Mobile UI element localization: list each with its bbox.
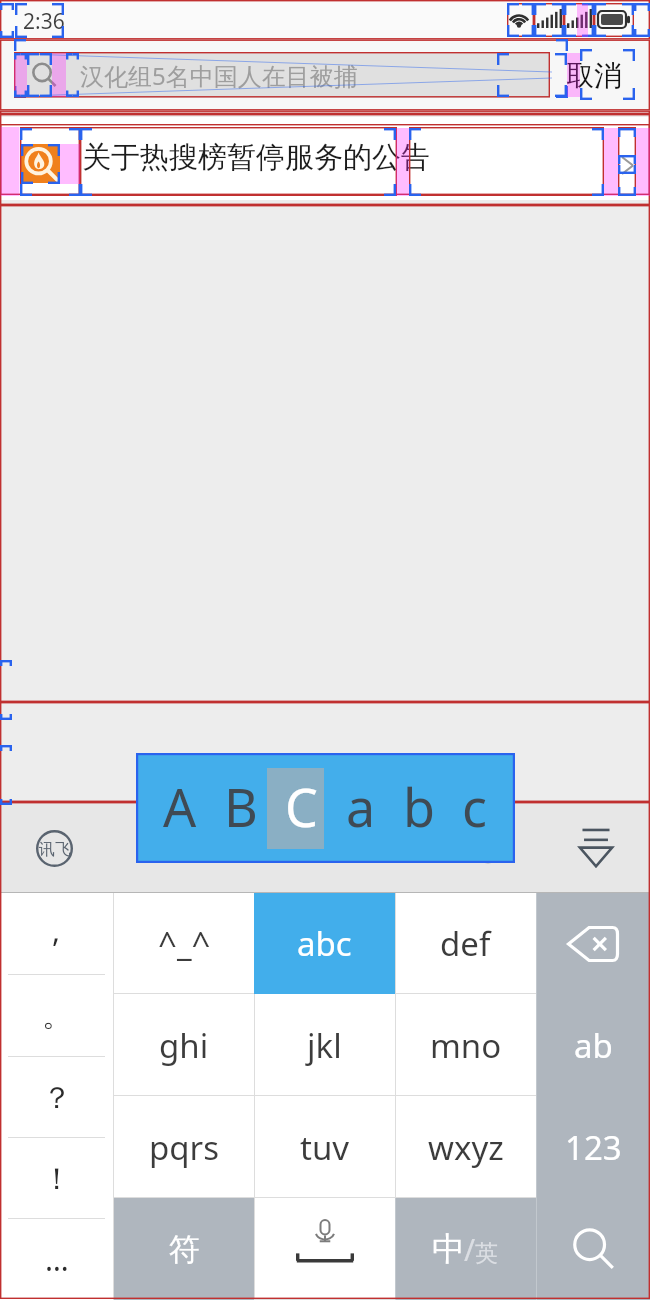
other: Search [569,1225,617,1273]
staticText: 中 [432,1228,465,1270]
staticText: A [163,771,197,842]
button[interactable]: 。 [0,975,113,1057]
staticText: 讯飞 [39,840,71,860]
staticText: ^_^ [158,921,211,966]
button[interactable]: 关于热搜榜暂停服务的公告 [0,117,650,200]
staticText: / [464,1229,476,1270]
staticText: , [52,910,61,951]
staticText: 符 [169,1230,200,1269]
button[interactable]: A [136,754,514,862]
button[interactable]: ？ [0,1057,113,1138]
button[interactable]: 取消 [566,39,622,111]
staticText: 关于热搜榜暂停服务的公告 [82,139,430,176]
staticText: pqrs [149,1125,220,1170]
staticText: C [285,771,318,842]
button[interactable]: Keyboard tool [358,828,394,864]
button[interactable]: … [0,1219,113,1300]
staticText: 英 [475,1239,498,1268]
button[interactable]: Search [536,1198,650,1300]
staticText: def [440,921,491,966]
button[interactable]: tuv [254,1096,395,1198]
button[interactable]: ab [536,994,650,1096]
button[interactable]: ghi [114,994,254,1096]
button[interactable]: iFlytek [36,830,73,867]
button[interactable]: Keyboard tool [254,828,290,864]
button[interactable]: 中 [395,1198,536,1300]
button[interactable]: ！ [0,1138,113,1219]
button[interactable]: Backspace [536,893,650,994]
staticText: ghi [159,1023,209,1068]
staticText: b [403,771,435,842]
button[interactable]: wxyz [395,1096,536,1198]
other: Space [294,1219,356,1274]
staticText: 汉化组5名中国人在目被捕 [80,59,358,92]
button[interactable]: Hide keyboard [570,818,622,870]
button[interactable]: abc [254,893,395,994]
staticText: ab [574,1023,613,1068]
staticText: ？ [42,1079,72,1117]
button[interactable]: , [0,893,113,975]
button[interactable]: mno [395,994,536,1096]
button[interactable]: Space [254,1198,395,1300]
staticText: … [45,1239,69,1280]
button[interactable]: pqrs [114,1096,254,1198]
other: More [621,156,634,175]
button[interactable]: 汉化组5名中国人在目被捕 [14,52,550,98]
button[interactable]: 123 [536,1096,650,1198]
staticText: 取消 [566,58,622,93]
staticText: wxyz [428,1125,504,1170]
other: Backspace [567,926,619,962]
button[interactable]: 符 [114,1198,254,1300]
staticText: a [346,771,376,842]
staticText: 123 [565,1125,622,1170]
staticText: 。 [42,997,72,1035]
staticText: mno [430,1023,502,1068]
staticText: abc [297,921,352,966]
staticText: tuv [300,1125,350,1170]
staticText: ！ [42,1160,72,1198]
button[interactable]: Emoji [470,828,506,864]
staticText: jkl [307,1023,342,1068]
button[interactable]: ^_^ [114,893,254,994]
staticText: 2:36 [23,7,65,36]
staticText: c [462,771,487,842]
button[interactable]: def [395,893,536,994]
staticText: B [224,771,258,842]
button[interactable]: jkl [254,994,395,1096]
